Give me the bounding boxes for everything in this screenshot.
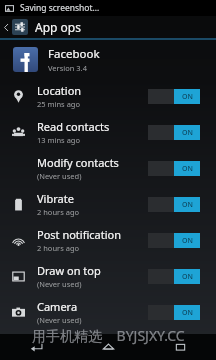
staticText: Modify contacts: [37, 155, 119, 170]
other: Up: [3, 24, 10, 31]
staticText: ON: [182, 164, 193, 174]
button[interactable]: Read contacts: [0, 114, 216, 150]
staticText: Version 3.4: [48, 63, 87, 73]
staticText: 13 mins ago: [37, 135, 81, 145]
button[interactable]: Toggle Modify contacts: [148, 161, 200, 176]
staticText: Camera: [37, 299, 78, 314]
button[interactable]: Toggle Location: [148, 89, 200, 104]
button[interactable]: Recents: [144, 334, 216, 360]
button[interactable]: Up: [0, 16, 216, 38]
button[interactable]: Toggle Vibrate: [148, 197, 200, 212]
staticText: Location: [37, 83, 82, 98]
button[interactable]: Modify contacts: [0, 150, 216, 186]
staticText: ON: [182, 272, 193, 282]
staticText: 2 hours ago: [37, 207, 80, 217]
staticText: (Never used): [37, 315, 82, 325]
button[interactable]: Toggle Post notification: [148, 233, 200, 248]
staticText: (Never used): [37, 279, 82, 289]
staticText: ON: [182, 128, 193, 138]
button[interactable]: Toggle Draw on top: [148, 269, 200, 284]
staticText: ON: [182, 92, 193, 102]
button[interactable]: Back: [0, 334, 72, 360]
button[interactable]: Home: [72, 334, 144, 360]
staticText: Draw on top: [37, 263, 101, 278]
staticText: 25 mins ago: [37, 99, 81, 109]
staticText: ON: [182, 236, 193, 246]
button[interactable]: Location: [0, 78, 216, 114]
button[interactable]: Vibrate: [0, 186, 216, 222]
staticText: Facebook: [48, 46, 100, 62]
button[interactable]: Facebook: [0, 40, 216, 78]
button[interactable]: Camera: [0, 294, 216, 330]
staticText: (Never used): [37, 171, 82, 181]
staticText: Read contacts: [37, 119, 110, 134]
staticText: App ops: [35, 19, 81, 35]
button[interactable]: Draw on top: [0, 258, 216, 294]
staticText: 用手机精选 BYJSJXY.CC: [32, 326, 185, 345]
button[interactable]: Post notification: [0, 222, 216, 258]
staticText: ON: [182, 200, 193, 210]
button[interactable]: Toggle Camera: [148, 305, 200, 320]
button[interactable]: Toggle Read contacts: [148, 125, 200, 140]
other: Screenshot: [5, 4, 14, 13]
staticText: Saving screenshot…: [20, 2, 100, 14]
staticText: Vibrate: [37, 191, 74, 206]
staticText: Post notification: [37, 227, 122, 242]
staticText: 2 hours ago: [37, 243, 80, 253]
staticText: ON: [182, 308, 193, 318]
